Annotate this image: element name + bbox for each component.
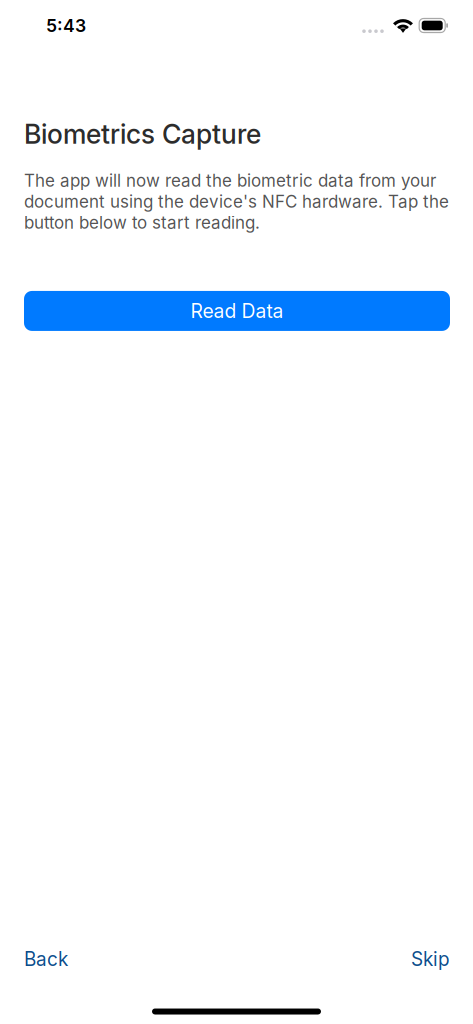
button[interactable]: Skip: [411, 944, 450, 974]
staticText: Read Data: [190, 299, 283, 323]
staticText: The app will now read the biometric data…: [24, 170, 449, 233]
staticText: 5:43: [46, 15, 86, 36]
button[interactable]: Back: [24, 944, 68, 974]
staticText: Biometrics Capture: [24, 118, 261, 150]
staticText: Skip: [411, 947, 450, 970]
staticText: Back: [24, 947, 68, 970]
button[interactable]: Read Data: [24, 291, 450, 331]
